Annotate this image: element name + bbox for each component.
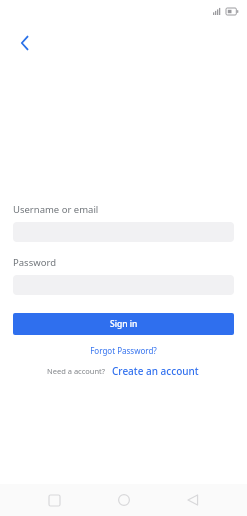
staticText: Create an account (112, 364, 199, 378)
staticText: Need a account? (47, 366, 106, 376)
staticText: Username or email (13, 203, 99, 216)
button[interactable]: Sign in (13, 313, 234, 335)
staticText: Password (13, 256, 56, 269)
button[interactable]: Back (8, 26, 42, 60)
button[interactable]: Create an account (110, 362, 201, 380)
button[interactable]: Forgot Password? (86, 343, 161, 358)
button[interactable]: Home (108, 484, 140, 516)
staticText: Sign in (110, 318, 138, 330)
button[interactable]: Back (177, 484, 209, 516)
staticText: Forgot Password? (90, 345, 157, 356)
button[interactable]: Recent apps (38, 484, 70, 516)
